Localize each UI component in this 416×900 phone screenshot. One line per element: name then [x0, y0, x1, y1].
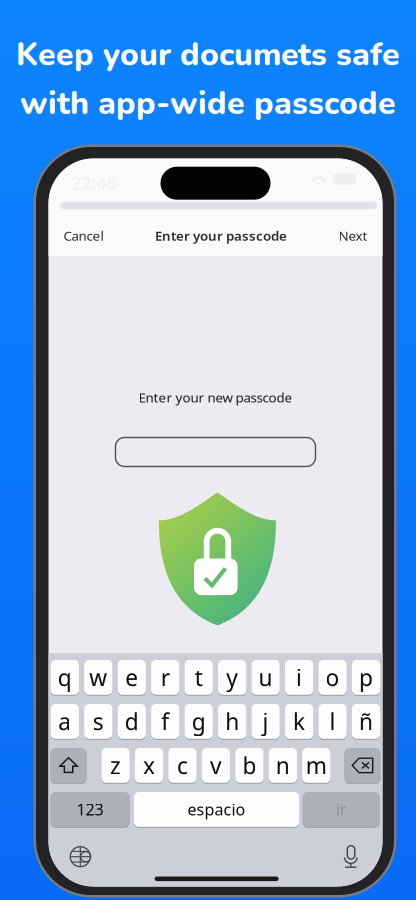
button[interactable]: Shift	[50, 747, 87, 784]
staticText: espacio	[188, 799, 246, 820]
staticText: m	[306, 750, 327, 780]
button[interactable]: x	[135, 747, 163, 784]
button[interactable]: s	[84, 703, 112, 740]
button[interactable]: espacio	[134, 791, 299, 828]
staticText: Keep your documets safe	[16, 33, 400, 77]
staticText: h	[225, 706, 239, 736]
staticText: o	[325, 662, 339, 692]
button[interactable]: w	[84, 659, 112, 696]
button[interactable]: j	[251, 703, 280, 740]
button[interactable]: n	[269, 747, 297, 784]
staticText: Next	[338, 227, 367, 244]
button[interactable]: c	[168, 747, 197, 784]
staticText: l	[329, 706, 335, 736]
staticText: e	[125, 662, 138, 692]
staticText: j	[263, 706, 269, 736]
button[interactable]: Dictate	[344, 846, 358, 869]
button[interactable]: Cancel	[48, 218, 118, 253]
button[interactable]: b	[235, 747, 263, 784]
staticText: u	[259, 662, 273, 692]
staticText: 22:46	[71, 171, 116, 194]
staticText: p	[359, 662, 373, 692]
staticText: a	[58, 706, 71, 736]
button[interactable]: y	[218, 659, 246, 696]
button[interactable]: r	[151, 659, 179, 696]
button[interactable]: k	[285, 703, 313, 740]
staticText: x	[143, 750, 155, 780]
button[interactable]: u	[251, 659, 280, 696]
staticText: s	[93, 706, 104, 736]
button[interactable]: i	[285, 659, 313, 696]
button[interactable]: g	[184, 703, 213, 740]
button[interactable]: Next	[323, 218, 382, 253]
staticText: Cancel	[63, 227, 103, 244]
button[interactable]: ñ	[352, 703, 380, 740]
staticText: Enter your passcode	[155, 227, 287, 244]
staticText: k	[293, 706, 305, 736]
staticText: v	[210, 750, 222, 780]
staticText: b	[242, 750, 256, 780]
button[interactable]: h	[218, 703, 246, 740]
button[interactable]: q	[51, 659, 79, 696]
button[interactable]: 123	[50, 791, 130, 828]
staticText: ñ	[359, 706, 373, 736]
staticText: ir	[336, 799, 347, 820]
button[interactable]: a	[51, 703, 79, 740]
staticText: n	[276, 750, 290, 780]
button[interactable]: t	[184, 659, 213, 696]
staticText: i	[296, 662, 302, 692]
staticText: w	[89, 662, 107, 692]
button[interactable]: o	[318, 659, 347, 696]
staticText: r	[161, 662, 170, 692]
button[interactable]: e	[118, 659, 146, 696]
staticText: with app-wide passcode	[20, 82, 396, 125]
button[interactable]: v	[202, 747, 230, 784]
button[interactable]: Change keyboard	[70, 846, 91, 867]
button[interactable]: p	[352, 659, 380, 696]
staticText: z	[110, 750, 121, 780]
button[interactable]: m	[302, 747, 330, 784]
button[interactable]: d	[118, 703, 146, 740]
staticText: f	[161, 706, 169, 736]
staticText: q	[58, 662, 72, 692]
staticText: c	[177, 750, 188, 780]
staticText: y	[226, 662, 238, 692]
button[interactable]: f	[151, 703, 179, 740]
staticText: Enter your new passcode	[138, 388, 292, 406]
staticText: t	[195, 662, 203, 692]
staticText: d	[125, 706, 139, 736]
button[interactable]: ir	[303, 791, 380, 828]
staticText: 123	[76, 799, 103, 820]
button[interactable]: Delete	[344, 747, 381, 784]
staticText: g	[192, 706, 206, 736]
button[interactable]: l	[318, 703, 347, 740]
button[interactable]: z	[101, 747, 130, 784]
